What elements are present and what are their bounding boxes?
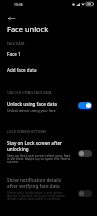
staticText: Unlock using face data <box>7 101 57 107</box>
button[interactable]: Face 1 <box>0 46 97 60</box>
staticText: Face 1 <box>7 51 21 57</box>
staticText: FACE DATA <box>7 41 25 46</box>
staticText: Show notification details after verifyin… <box>7 177 62 189</box>
button[interactable]: Show notification details after verifyin… <box>0 164 97 201</box>
button[interactable]: Back <box>5 12 17 24</box>
staticText: Stay on the Lock screen after your face … <box>7 153 73 164</box>
staticText: LOCK SCREEN OPTIONS <box>7 129 47 134</box>
button[interactable]: Unlock using face data <box>0 95 97 113</box>
button[interactable]: Toggle <box>78 150 92 157</box>
staticText: Add face data <box>7 67 37 73</box>
staticText: Stay on Lock screen after unlocking <box>7 140 63 152</box>
staticText: Unlock device using your face <box>7 108 56 113</box>
button[interactable]: Toggle <box>78 102 92 109</box>
button[interactable]: Add face data <box>0 60 97 76</box>
staticText: UNLOCK USING FACE DATA <box>7 90 52 95</box>
staticText: Face unlock <box>7 24 49 34</box>
staticText: Show only notification icons when device… <box>7 190 73 201</box>
button[interactable]: Stay on Lock screen after unlocking <box>0 134 97 164</box>
button[interactable]: Toggle <box>78 190 92 197</box>
staticText: 19:36 <box>14 2 23 7</box>
